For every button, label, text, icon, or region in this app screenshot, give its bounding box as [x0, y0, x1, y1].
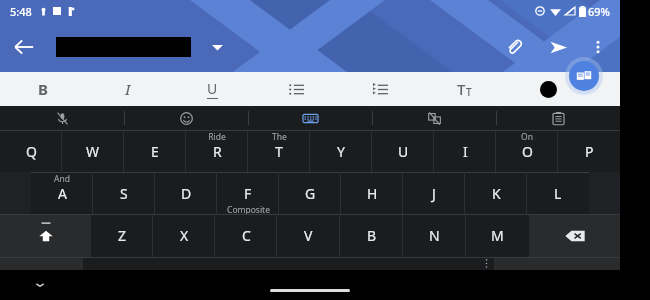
- button[interactable]: B: [340, 214, 403, 257]
- staticText: R: [213, 142, 222, 161]
- button[interactable]: W: [62, 130, 124, 172]
- button[interactable]: Attach file: [492, 25, 536, 69]
- button[interactable]: Keyboard: [249, 106, 372, 130]
- button[interactable]: J: [403, 172, 465, 214]
- button[interactable]: Translate: [373, 106, 496, 130]
- button[interactable]: Contacts: [569, 61, 599, 91]
- button[interactable]: On: [496, 130, 558, 172]
- button[interactable]: X: [153, 214, 215, 257]
- staticText: D: [181, 184, 192, 203]
- button[interactable]: Home: [270, 289, 350, 292]
- staticText: Composite: [227, 204, 270, 216]
- button[interactable]: Emoji: [125, 106, 248, 130]
- staticText: I: [125, 79, 131, 99]
- button[interactable]: S: [93, 172, 155, 214]
- button[interactable]: ol: [338, 72, 422, 106]
- staticText: T: [457, 79, 466, 99]
- button[interactable]: G: [279, 172, 341, 214]
- staticText: I: [463, 142, 468, 161]
- button[interactable]: V: [277, 214, 340, 257]
- button[interactable]: D: [155, 172, 217, 214]
- staticText: Q: [26, 142, 37, 161]
- button[interactable]: Backspace: [529, 214, 620, 257]
- button[interactable]: Tt: [422, 72, 506, 106]
- staticText: M: [491, 226, 504, 245]
- button[interactable]: U: [170, 72, 254, 106]
- staticText: B: [367, 226, 377, 245]
- staticText: H: [367, 184, 378, 203]
- button[interactable]: More options: [580, 29, 616, 65]
- button[interactable]: Comma: [83, 257, 140, 300]
- button[interactable]: N: [403, 214, 466, 257]
- staticText: ,: [110, 269, 114, 288]
- button[interactable]: Send: [536, 25, 580, 69]
- button[interactable]: Enter: [494, 257, 620, 300]
- staticText: X: [180, 226, 189, 245]
- staticText: T: [466, 85, 472, 99]
- staticText: And: [54, 173, 70, 185]
- button[interactable]: Clipboard: [497, 106, 620, 130]
- button[interactable]: Shift: [0, 214, 91, 257]
- staticText: V: [304, 226, 313, 245]
- staticText: .: [464, 269, 468, 288]
- staticText: C: [242, 226, 251, 245]
- staticText: On: [521, 131, 533, 143]
- button[interactable]: Y: [310, 130, 372, 172]
- button[interactable]: L: [527, 172, 589, 214]
- button[interactable]: I: [85, 72, 170, 106]
- button[interactable]: Period: [437, 257, 494, 300]
- staticText: U: [207, 79, 218, 98]
- staticText: U: [398, 142, 409, 161]
- button[interactable]: The: [248, 130, 310, 172]
- button[interactable]: P: [558, 130, 620, 172]
- button[interactable]: M: [466, 214, 529, 257]
- button[interactable]: Hide keyboard: [22, 270, 58, 300]
- button[interactable]: Q: [0, 130, 62, 172]
- button[interactable]: B: [0, 72, 85, 106]
- staticText: P: [585, 142, 594, 161]
- staticText: Ride: [208, 131, 226, 143]
- staticText: W: [86, 142, 100, 161]
- button[interactable]: Symbols: [0, 257, 83, 300]
- button[interactable]: K: [465, 172, 527, 214]
- staticText: S: [120, 184, 128, 203]
- staticText: 5:48: [10, 4, 32, 19]
- button[interactable]: Composite: [217, 172, 279, 214]
- button[interactable]: color: [506, 72, 590, 106]
- button[interactable]: Back: [0, 23, 48, 71]
- staticText: J: [432, 184, 436, 203]
- button[interactable]: H: [341, 172, 403, 214]
- button[interactable]: Ride: [186, 130, 248, 172]
- button[interactable]: Voice input: [0, 106, 124, 130]
- staticText: T: [275, 142, 283, 161]
- button[interactable]: C: [215, 214, 277, 257]
- button[interactable]: I: [434, 130, 496, 172]
- button[interactable]: ul: [254, 72, 338, 106]
- staticText: N: [429, 226, 440, 245]
- staticText: ?123: [29, 271, 55, 287]
- button[interactable]: And: [31, 172, 93, 214]
- staticText: E: [151, 142, 159, 161]
- staticText: Z: [118, 226, 127, 245]
- button[interactable]: Z: [91, 214, 153, 257]
- staticText: Y: [337, 142, 345, 161]
- staticText: O: [522, 142, 533, 161]
- staticText: The: [272, 131, 287, 143]
- staticText: F: [244, 184, 252, 203]
- button[interactable]: Space: [140, 257, 437, 300]
- staticText: A: [58, 184, 67, 203]
- staticText: 69%: [588, 4, 610, 19]
- staticText: G: [305, 184, 316, 203]
- staticText: K: [492, 184, 501, 203]
- button[interactable]: U: [372, 130, 434, 172]
- button[interactable]: Expand: [203, 33, 231, 61]
- staticText: L: [554, 184, 562, 203]
- button[interactable]: E: [124, 130, 186, 172]
- staticText: B: [38, 79, 48, 99]
